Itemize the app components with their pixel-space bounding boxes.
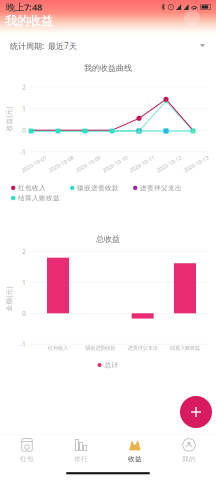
staticText: 红包收入 — [18, 184, 46, 192]
staticText: 1 — [22, 104, 26, 113]
staticText: 2020-10-09 — [74, 160, 102, 168]
staticText: 2 — [22, 247, 26, 256]
staticText: 统计周期: 最近7天 — [10, 41, 77, 51]
staticText: 红包 — [20, 455, 34, 463]
button[interactable]: 排行 — [54, 434, 108, 467]
button[interactable]: 新建 — [180, 396, 212, 428]
staticText: -1 — [20, 340, 26, 349]
staticText: 晚上7:48 — [6, 1, 42, 13]
staticText: 我的收益曲线 — [84, 63, 132, 73]
staticText: 收益 — [128, 455, 142, 463]
staticText: 1 — [22, 278, 26, 287]
staticText: -1 — [20, 147, 26, 156]
staticText: 0 — [22, 126, 26, 135]
staticText: 2020-10-07 — [20, 160, 48, 168]
staticText: 结算入账收益 — [170, 345, 200, 351]
staticText: 0 — [22, 309, 26, 318]
button[interactable]: 红包 — [0, 434, 54, 467]
staticText: 2020-10-08 — [47, 160, 75, 168]
staticText: 红包收入 — [48, 345, 68, 351]
staticText: 2020-10-13 — [182, 160, 210, 168]
staticText: 金额(元) — [0, 295, 21, 303]
staticText: 进责伴父支出 — [128, 345, 158, 351]
button[interactable]: 统计周期: 最近7天 — [0, 37, 216, 55]
staticText: 2020-10-11 — [128, 160, 156, 168]
staticText: 我的收益 — [5, 14, 53, 28]
staticText: 进责伴父支出 — [140, 184, 182, 192]
staticText: 2020-10-12 — [155, 160, 183, 168]
button[interactable]: 我的 — [162, 434, 216, 467]
staticText: 结算入账收益 — [18, 194, 60, 202]
staticText: 镶嵌进责收款 — [85, 345, 115, 351]
staticText: 排行 — [74, 455, 88, 463]
button[interactable]: 收益 — [108, 434, 162, 467]
staticText: 收益(元) — [0, 115, 21, 123]
staticText: 2020-10-10 — [101, 160, 129, 168]
staticText: 总计 — [104, 361, 118, 369]
staticText: 我的 — [182, 455, 196, 463]
staticText: 镶嵌进责收款 — [77, 184, 119, 192]
staticText: 总收益 — [96, 234, 120, 244]
staticText: 2 — [22, 83, 26, 91]
